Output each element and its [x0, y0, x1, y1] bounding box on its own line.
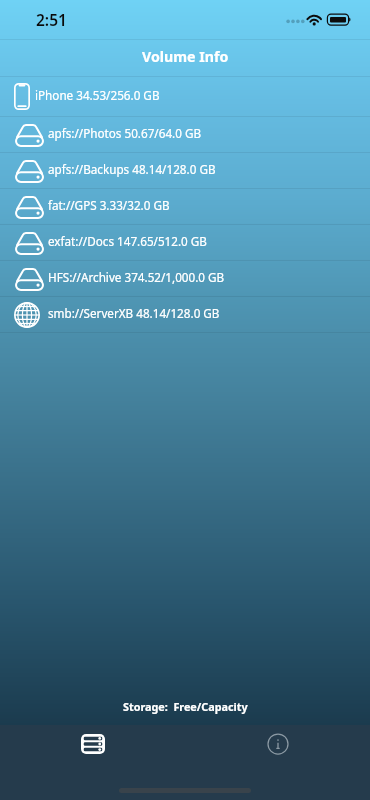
button[interactable]: HFS://Archive 374.52/1,000.0 GB: [0, 261, 370, 297]
button[interactable]: Volumes: [0, 725, 185, 774]
staticText: smb://ServerXB 48.14/128.0 GB: [48, 305, 220, 321]
button[interactable]: smb://ServerXB 48.14/128.0 GB: [0, 297, 370, 333]
button[interactable]: apfs://Photos 50.67/64.0 GB: [0, 117, 370, 153]
button[interactable]: Info: [185, 725, 370, 774]
staticText: exfat://Docs 147.65/512.0 GB: [48, 233, 207, 249]
staticText: 2:51: [36, 9, 67, 30]
staticText: apfs://Backups 48.14/128.0 GB: [48, 161, 216, 177]
staticText: apfs://Photos 50.67/64.0 GB: [48, 125, 202, 141]
button[interactable]: apfs://Backups 48.14/128.0 GB: [0, 153, 370, 189]
staticText: HFS://Archive 374.52/1,000.0 GB: [48, 269, 225, 285]
staticText: fat://GPS 3.33/32.0 GB: [48, 197, 170, 213]
button[interactable]: exfat://Docs 147.65/512.0 GB: [0, 225, 370, 261]
button[interactable]: fat://GPS 3.33/32.0 GB: [0, 189, 370, 225]
button[interactable]: iPhone 34.53/256.0 GB: [0, 77, 370, 117]
staticText: iPhone 34.53/256.0 GB: [35, 87, 160, 103]
staticText: Storage: Free/Capacity: [123, 699, 248, 714]
staticText: Volume Info: [142, 47, 229, 66]
